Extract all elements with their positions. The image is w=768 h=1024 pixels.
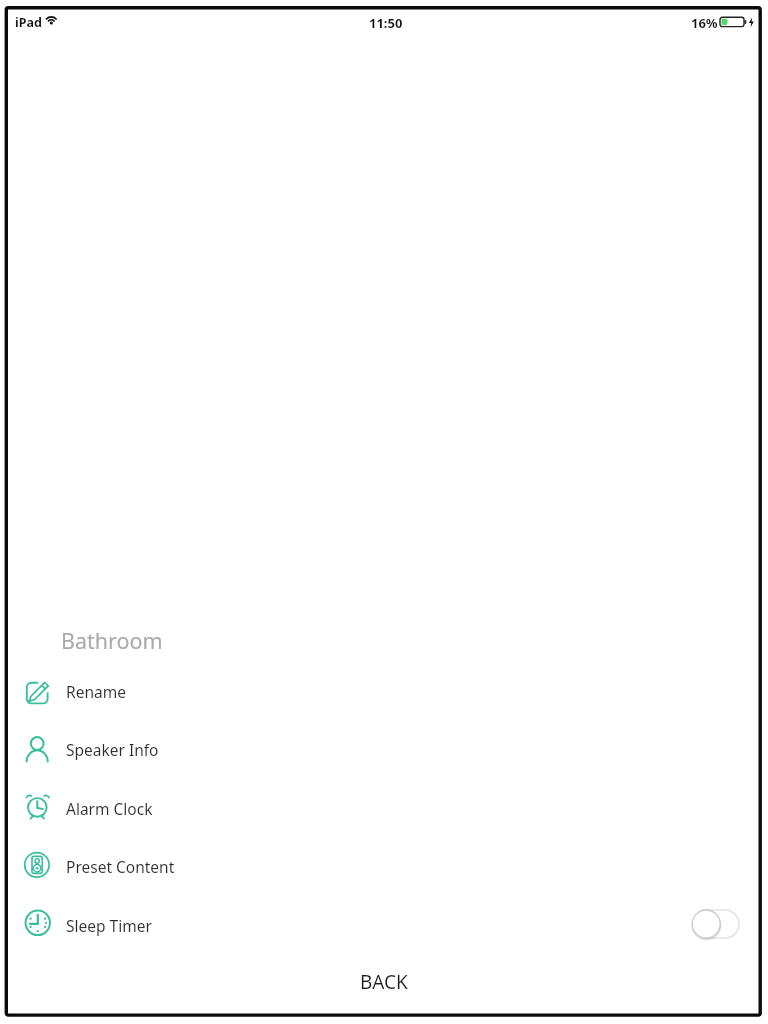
button[interactable]: Speaker Info — [0, 720, 768, 778]
staticText: Sleep Timer — [66, 915, 152, 936]
button[interactable]: Sleep Timer — [0, 896, 768, 954]
staticText: BACK — [360, 969, 408, 995]
button[interactable]: BACK — [0, 958, 768, 1006]
staticText: 11:50 — [369, 14, 403, 32]
staticText: Preset Content — [66, 856, 175, 877]
staticText: Alarm Clock — [66, 798, 153, 819]
button[interactable] — [692, 909, 740, 939]
button[interactable]: Alarm Clock — [0, 779, 768, 837]
staticText: Bathroom — [61, 626, 163, 655]
staticText: Speaker Info — [66, 739, 159, 760]
button[interactable]: Rename — [0, 662, 768, 720]
staticText: 16% — [691, 14, 718, 32]
button[interactable]: Preset Content — [0, 837, 768, 895]
staticText: iPad — [15, 14, 42, 31]
staticText: Rename — [66, 681, 126, 702]
